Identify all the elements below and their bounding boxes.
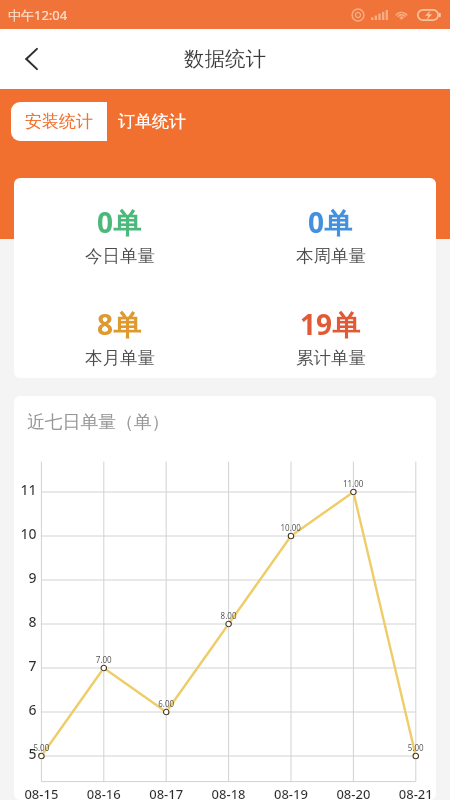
button[interactable]: 0单 [225,203,436,267]
button[interactable]: 19单 [225,305,436,369]
staticText: 今日单量 [85,245,155,267]
staticText: 中午12:04 [8,6,68,24]
staticText: 本周单量 [296,245,366,267]
button[interactable]: 8单 [14,305,225,369]
button[interactable]: 订单统计 [107,102,197,141]
button[interactable]: 安装统计 [11,102,107,141]
staticText: 8单 [97,305,142,343]
staticText: 数据统计 [184,46,266,72]
staticText: 0单 [97,203,142,241]
staticText: 安装统计 [25,111,93,132]
staticText: 0单 [308,203,353,241]
staticText: 累计单量 [296,347,366,369]
button[interactable]: 0单 [14,203,225,267]
staticText: 近七日单量（单） [27,411,170,433]
button[interactable]: Back [0,29,62,89]
staticText: 19单 [300,305,361,343]
staticText: 订单统计 [118,111,186,132]
staticText: 本月单量 [85,347,155,369]
